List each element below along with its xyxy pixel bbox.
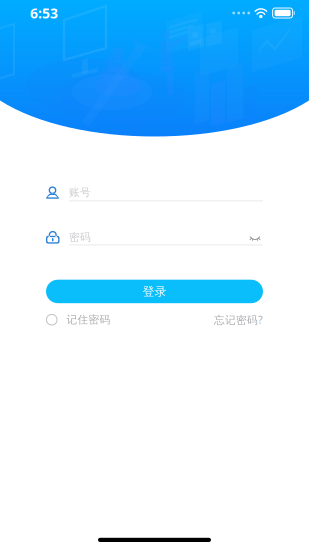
staticText: 记住密码 (66, 313, 110, 326)
staticText: 账号 (69, 186, 91, 199)
button[interactable]: 登录 (46, 280, 263, 303)
staticText: 6:53 (30, 3, 58, 23)
button[interactable]: Show password (247, 232, 263, 242)
button[interactable]: 忘记密码? (214, 312, 263, 327)
staticText: 忘记密码? (214, 312, 263, 327)
staticText: 密码 (69, 230, 91, 244)
button[interactable]: 记住密码 (46, 313, 110, 326)
staticText: 登录 (142, 284, 166, 299)
